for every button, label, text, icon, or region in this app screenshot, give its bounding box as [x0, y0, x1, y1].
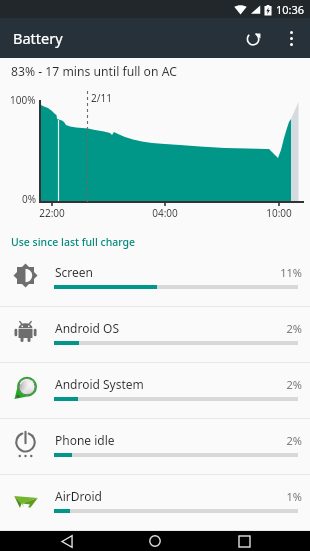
- button[interactable]: Android OS: [0, 307, 310, 363]
- button[interactable]: Home: [133, 531, 177, 551]
- staticText: 100%: [10, 93, 36, 107]
- staticText: 2%: [240, 433, 302, 448]
- staticText: 10:36: [276, 2, 305, 17]
- staticText: 11%: [240, 265, 302, 280]
- button[interactable]: Back: [45, 531, 89, 551]
- staticText: 1%: [240, 489, 302, 504]
- staticText: Battery: [13, 28, 63, 48]
- staticText: 2/11: [91, 91, 112, 105]
- staticText: AirDroid: [55, 488, 102, 504]
- staticText: 83% - 17 mins until full on AC: [11, 63, 177, 80]
- button[interactable]: Phone idle: [0, 419, 310, 475]
- button[interactable]: AirDroid: [0, 475, 310, 531]
- button[interactable]: More options: [272, 19, 310, 57]
- button[interactable]: Android System: [0, 363, 310, 419]
- staticText: 2%: [240, 321, 302, 336]
- staticText: 2%: [240, 377, 302, 392]
- staticText: Use since last full charge: [11, 235, 136, 249]
- staticText: 0%: [22, 192, 37, 206]
- staticText: Android System: [55, 376, 144, 392]
- staticText: 22:00: [37, 206, 67, 220]
- staticText: 04:00: [150, 206, 180, 220]
- button[interactable]: Screen: [0, 251, 310, 307]
- button[interactable]: Recent apps: [222, 531, 266, 551]
- staticText: Screen: [55, 264, 94, 280]
- staticText: 10:00: [264, 206, 294, 220]
- staticText: Android OS: [55, 320, 119, 336]
- button[interactable]: Refresh: [234, 19, 272, 57]
- staticText: Phone idle: [55, 432, 115, 448]
